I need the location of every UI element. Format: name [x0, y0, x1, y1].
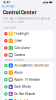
staticText: Dark Mode: [14, 85, 31, 89]
button[interactable]: Calculator: [3, 44, 53, 51]
button[interactable]: Timer: [3, 37, 53, 44]
staticText: Camera: [14, 53, 25, 57]
staticText: Control Center: [3, 10, 37, 15]
staticText: Accessibility Shortcuts: [14, 64, 48, 67]
button[interactable]: Accessibility Shortcuts: [3, 62, 53, 69]
staticText: Settings: [4, 5, 14, 8]
staticText: Guided Access: [14, 99, 36, 100]
button[interactable]: Apple TV Remote: [3, 76, 53, 83]
button[interactable]: Flashlight: [3, 30, 53, 37]
staticText: Flashlight: [14, 32, 29, 35]
staticText: Add and organize controls to appear in C…: [3, 17, 50, 23]
button[interactable]: Dark Mode: [3, 83, 53, 90]
button[interactable]: Do Not Disturb: [3, 90, 53, 97]
staticText: Apple TV Remote: [14, 78, 40, 81]
staticText: Calculator: [14, 46, 30, 50]
staticText: 9:41: [3, 1, 9, 4]
button[interactable]: Guided Access: [3, 97, 53, 100]
staticText: INCLUDE: [5, 26, 16, 29]
staticText: Alarm: [14, 71, 22, 74]
button[interactable]: Alarm: [3, 69, 53, 76]
staticText: Timer: [14, 39, 22, 43]
staticText: Do Not Disturb: [14, 92, 35, 96]
button[interactable]: Settings: [2, 4, 22, 8]
button[interactable]: Camera: [3, 51, 53, 59]
staticText: MORE CONTROLS: [5, 58, 24, 61]
